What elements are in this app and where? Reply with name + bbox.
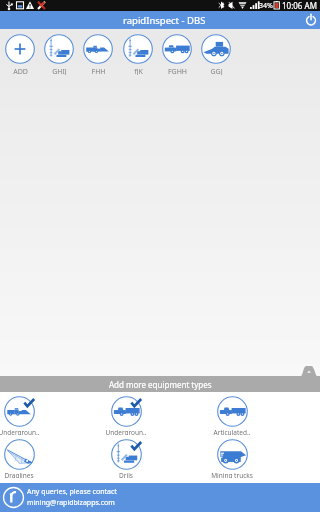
staticText: Undergroun.. [0, 428, 54, 435]
staticText: rapidInspect - DBS [123, 14, 206, 27]
staticText: 10:06 AM [282, 0, 317, 11]
staticText: fJK [119, 67, 158, 75]
staticText: GGJ [197, 67, 236, 75]
staticText: Undergroun.. [91, 428, 161, 435]
staticText: Draglines [0, 471, 54, 478]
button[interactable]: GGJ [196, 29, 235, 75]
button[interactable]: fJK [118, 29, 157, 75]
button[interactable]: Draglines [0, 435, 54, 478]
staticText: Any queries, please contact [27, 487, 117, 497]
staticText: FGHH [158, 67, 197, 75]
staticText: FHH [79, 67, 118, 75]
button[interactable]: Mining trucks [197, 435, 267, 478]
staticText: Add more equipment types [109, 379, 212, 390]
staticText: GHIJ [40, 67, 79, 75]
staticText: Mining trucks [197, 471, 267, 478]
staticText: Drils [91, 471, 161, 478]
button[interactable]: GHIJ [39, 29, 78, 75]
button[interactable]: Add more equipment types [0, 376, 320, 392]
staticText: Articulated.. [197, 428, 267, 435]
staticText: 34% [259, 1, 273, 11]
staticText: ADD [1, 67, 40, 75]
button[interactable]: Undergroun.. [91, 392, 161, 435]
button[interactable]: Drils [91, 435, 161, 478]
button[interactable]: Expand equipment drawer [0, 366, 320, 376]
button[interactable]: ADD [0, 29, 39, 75]
button[interactable]: Any queries, please contact [0, 483, 320, 512]
button[interactable]: FHH [78, 29, 117, 75]
button[interactable]: Articulated.. [197, 392, 267, 435]
button[interactable]: Power / log out [302, 11, 320, 29]
button[interactable]: FGHH [157, 29, 196, 75]
staticText: mining@rapidbizapps.com [27, 498, 115, 508]
button[interactable]: Undergroun.. [0, 392, 54, 435]
